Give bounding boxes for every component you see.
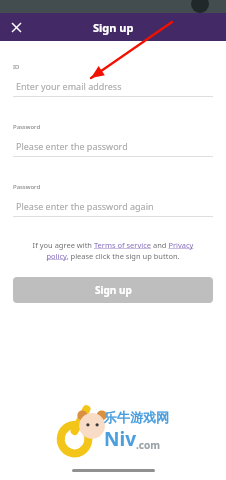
staticText: .com	[136, 438, 160, 452]
staticText: Sign up	[93, 20, 134, 35]
staticText: 乐牛游戏网	[104, 409, 169, 425]
staticText: Enter your email address	[16, 80, 122, 92]
button[interactable]: Please enter the password	[0, 139, 226, 153]
staticText: Niv	[104, 426, 136, 452]
staticText: Please enter the password again	[16, 200, 154, 212]
button[interactable]: Enter your email address	[0, 79, 226, 93]
staticText: Password	[13, 123, 41, 131]
button[interactable]: Please enter the password again	[0, 199, 226, 213]
staticText: ID	[13, 63, 20, 71]
button[interactable]: Sign up	[13, 277, 213, 303]
staticText: Sign up	[95, 283, 132, 297]
button[interactable]: Close	[5, 16, 27, 38]
staticText: Please enter the password	[16, 140, 128, 152]
staticText: Password	[13, 183, 41, 191]
staticText: If you agree with Terms of service and P…	[26, 240, 200, 261]
